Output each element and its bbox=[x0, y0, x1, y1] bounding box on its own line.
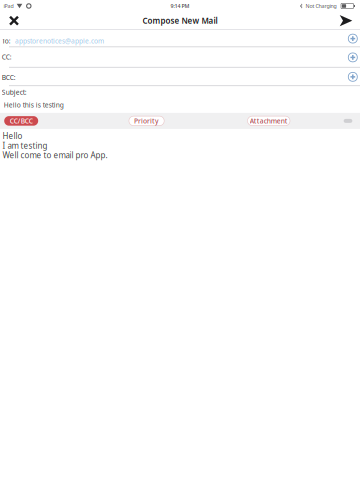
staticText: CC: bbox=[2, 52, 12, 61]
staticText: Not Charging bbox=[305, 2, 336, 10]
staticText: Compose New Mail bbox=[142, 15, 217, 26]
button[interactable]: Add recipient bbox=[345, 30, 360, 47]
staticText: Hello bbox=[3, 131, 23, 141]
button[interactable]: Close bbox=[1, 12, 27, 29]
button[interactable]: Send bbox=[333, 12, 359, 29]
staticText: Hello this is testing bbox=[4, 101, 64, 109]
staticText: I am testing bbox=[3, 140, 48, 151]
staticText: Attachment bbox=[250, 116, 288, 125]
staticText: Subject: bbox=[2, 88, 27, 97]
staticText: Well come to email pro App. bbox=[3, 150, 108, 160]
staticText: CC/BCC bbox=[10, 116, 33, 125]
button[interactable]: Add recipient bbox=[345, 47, 360, 68]
button[interactable]: Priority bbox=[129, 113, 164, 129]
staticText: BCC: bbox=[2, 73, 16, 82]
staticText: iPad bbox=[3, 2, 13, 10]
button[interactable]: Attachment bbox=[247, 113, 290, 129]
staticText: To: bbox=[2, 36, 11, 45]
button[interactable]: Hide keyboard bbox=[340, 113, 356, 129]
button[interactable]: Add recipient bbox=[345, 68, 360, 86]
button[interactable]: CC/BCC bbox=[4, 113, 38, 129]
staticText: appstorenotices@apple.com bbox=[15, 36, 104, 45]
staticText: Priority bbox=[134, 116, 159, 125]
staticText: 9:14 PM bbox=[170, 2, 189, 10]
